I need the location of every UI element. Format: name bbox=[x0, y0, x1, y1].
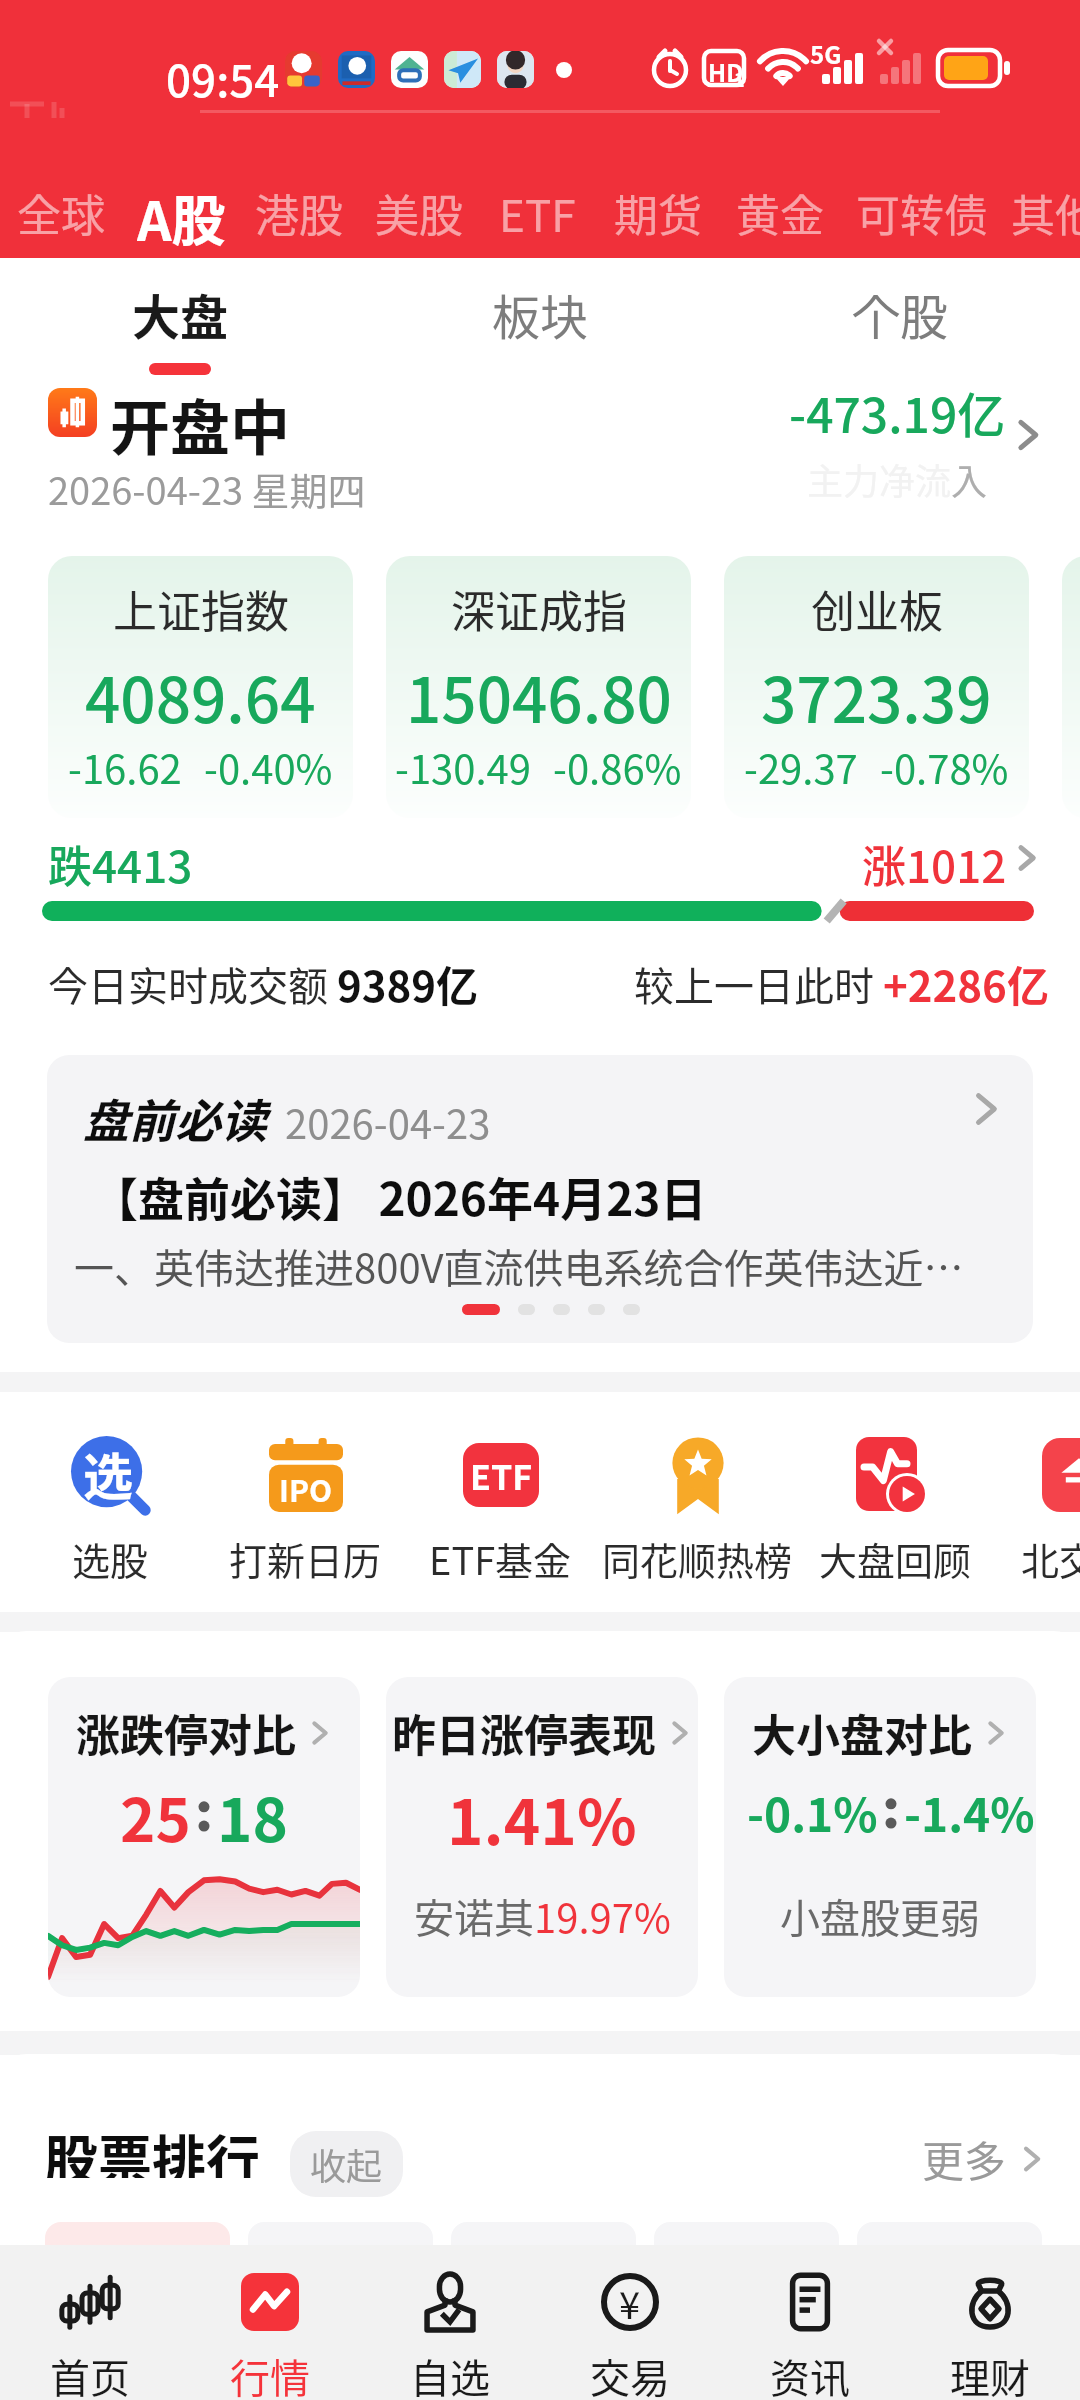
button[interactable]: 上证指数 bbox=[48, 556, 353, 818]
staticText: 涨跌停对比 bbox=[76, 1701, 296, 1765]
button[interactable]: 北证50 bbox=[1062, 556, 1080, 818]
button[interactable]: 大小盘对比 bbox=[724, 1677, 1036, 1997]
button[interactable]: ¥ bbox=[540, 2245, 720, 2400]
button[interactable]: 行情 bbox=[180, 2245, 360, 2400]
staticText: 交易 bbox=[590, 2347, 670, 2400]
staticText: 盘前必读 bbox=[83, 1085, 267, 1152]
staticText: 2026-04-23 bbox=[285, 1093, 491, 1151]
staticText: 可转债 bbox=[856, 181, 988, 245]
staticText: -0.1% bbox=[747, 1779, 878, 1846]
staticText: 3723.39 bbox=[761, 651, 992, 741]
button[interactable]: 盘前必读 bbox=[47, 1055, 1033, 1343]
staticText: 理财 bbox=[950, 2347, 1030, 2400]
button[interactable]: 黄金 bbox=[721, 178, 839, 248]
staticText: HD bbox=[708, 54, 744, 88]
staticText: -29.37 bbox=[744, 738, 858, 796]
button[interactable]: 理财 bbox=[900, 2245, 1080, 2400]
staticText: 深证成指 bbox=[451, 577, 627, 641]
staticText: 北交所 bbox=[1021, 1531, 1080, 1584]
button[interactable]: 更多 bbox=[922, 2128, 1045, 2189]
staticText: 15046.80 bbox=[406, 651, 672, 741]
button[interactable]: 期货 bbox=[599, 178, 717, 248]
button[interactable]: 同花顺热榜 bbox=[577, 1414, 817, 1584]
button[interactable]: 跌4413 bbox=[0, 830, 1080, 892]
staticText: 09:54 bbox=[166, 46, 280, 104]
button[interactable]: 自选 bbox=[360, 2245, 540, 2400]
staticText: 9389亿 bbox=[337, 953, 479, 1013]
staticText: 1 bbox=[734, 66, 745, 90]
staticText: 板块 bbox=[492, 279, 589, 349]
staticText: -16.62 bbox=[68, 738, 182, 796]
staticText: 期货 bbox=[614, 181, 702, 245]
button[interactable]: 资讯 bbox=[720, 2245, 900, 2400]
button[interactable]: IPO bbox=[185, 1414, 425, 1584]
staticText: ETF基金 bbox=[429, 1531, 572, 1584]
staticText: 黄金 bbox=[736, 181, 824, 245]
button[interactable]: ETF bbox=[380, 1414, 620, 1584]
staticText: 大盘回顾 bbox=[819, 1531, 972, 1584]
staticText: 自选 bbox=[410, 2347, 490, 2400]
staticText: 开盘中 bbox=[110, 380, 290, 467]
button[interactable]: 全球 bbox=[2, 178, 120, 248]
staticText: -1.4% bbox=[904, 1779, 1035, 1846]
staticText: 昨日涨停表现 bbox=[392, 1701, 656, 1765]
button[interactable]: 港股 bbox=[240, 178, 358, 248]
staticText: 个股 bbox=[852, 279, 949, 349]
staticText: 美股 bbox=[375, 181, 463, 245]
button[interactable]: 板块 bbox=[430, 262, 650, 380]
staticText: -473.19亿 bbox=[789, 377, 1006, 447]
staticText: 全球 bbox=[17, 181, 105, 245]
button[interactable]: 首页 bbox=[0, 2245, 180, 2400]
staticText: 18 bbox=[217, 1772, 288, 1859]
button[interactable]: 涨跌停对比 bbox=[48, 1677, 360, 1997]
staticText: 19.97% bbox=[534, 1887, 671, 1945]
staticText: 5G bbox=[810, 36, 842, 66]
button[interactable]: 个股 bbox=[790, 262, 1010, 380]
button[interactable]: 大盘回顾 bbox=[775, 1414, 1015, 1584]
button[interactable]: 其他 bbox=[996, 178, 1080, 248]
button[interactable]: 选 bbox=[0, 1414, 230, 1584]
button[interactable]: 大盘 bbox=[70, 262, 290, 380]
staticText: 大盘 bbox=[132, 279, 229, 349]
staticText: 选股 bbox=[72, 1531, 149, 1584]
staticText: -0.40% bbox=[204, 738, 333, 796]
button[interactable]: 开盘中 bbox=[0, 375, 1080, 505]
staticText: 资讯 bbox=[770, 2347, 850, 2400]
staticText: 同花顺热榜 bbox=[602, 1531, 793, 1584]
staticText: 港股 bbox=[255, 181, 343, 245]
staticText: A股 bbox=[137, 178, 226, 248]
staticText: 大小盘对比 bbox=[752, 1701, 972, 1765]
button[interactable]: 收起 bbox=[290, 2131, 403, 2197]
button[interactable]: 深证成指 bbox=[386, 556, 691, 818]
button[interactable]: 可转债 bbox=[841, 178, 1003, 248]
staticText: 收起 bbox=[310, 2138, 383, 2190]
staticText: 更多 bbox=[922, 2128, 1007, 2189]
staticText: 【盘前必读】 2026年4月23日 bbox=[92, 1163, 707, 1230]
staticText: 上证指数 bbox=[113, 577, 289, 641]
staticText: 安诺其 bbox=[414, 1887, 534, 1945]
staticText: 主力净流 bbox=[807, 453, 952, 505]
staticText: ETF bbox=[499, 181, 576, 245]
staticText: 2026-04-23 星期四 bbox=[48, 461, 366, 516]
button[interactable]: 创业板 bbox=[724, 556, 1029, 818]
staticText: 今日实时成交额 bbox=[48, 955, 337, 1013]
staticText: 股票排行 bbox=[44, 2118, 260, 2178]
staticText: 其他 bbox=[1011, 181, 1080, 245]
staticText: 首页 bbox=[50, 2347, 130, 2400]
button[interactable]: A股 bbox=[112, 178, 250, 248]
staticText: 4089.64 bbox=[85, 651, 316, 741]
staticText: 行情 bbox=[230, 2347, 310, 2400]
staticText: 较上一日此时 bbox=[634, 955, 883, 1013]
staticText: 入 bbox=[951, 453, 988, 505]
staticText: 选 bbox=[83, 1437, 133, 1509]
button[interactable]: 北交所 bbox=[958, 1414, 1080, 1584]
staticText: -130.49 bbox=[395, 738, 531, 796]
button[interactable]: ETF bbox=[482, 178, 593, 248]
staticText: ETF bbox=[470, 1451, 533, 1500]
staticText: 打新日历 bbox=[229, 1531, 382, 1584]
staticText: -0.86% bbox=[553, 738, 682, 796]
button[interactable]: 美股 bbox=[360, 178, 478, 248]
staticText: 25 bbox=[120, 1772, 191, 1859]
button[interactable]: 昨日涨停表现 bbox=[386, 1677, 698, 1997]
staticText: -0.78% bbox=[880, 738, 1009, 796]
